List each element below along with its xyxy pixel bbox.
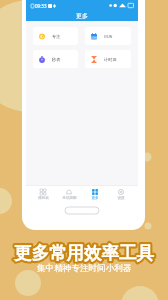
button[interactable]: 更多 xyxy=(82,189,108,201)
staticText: 专注 xyxy=(52,34,61,39)
staticText: 考试提醒 xyxy=(62,196,77,201)
staticText: 09:33 xyxy=(35,3,47,9)
staticText: 更多 xyxy=(91,196,99,201)
button[interactable]: 课程表 xyxy=(30,189,56,201)
button[interactable]: 设置 xyxy=(108,189,134,201)
staticText: 更多 xyxy=(76,12,88,20)
staticText: 计时器 xyxy=(104,57,117,62)
staticText: 更多常用效率工具 xyxy=(14,242,154,264)
button[interactable]: 考试提醒 xyxy=(56,189,82,201)
button[interactable]: 计时器 xyxy=(85,50,131,68)
button[interactable]: 专注 xyxy=(33,27,78,45)
staticText: 设置 xyxy=(117,196,125,201)
staticText: 秒表 xyxy=(52,57,61,62)
staticText: 课程表 xyxy=(38,196,49,201)
button[interactable]: 秒表 xyxy=(33,50,78,68)
staticText: 集中精神专注时间小利器 xyxy=(37,263,132,274)
button[interactable]: 日历 xyxy=(85,27,131,45)
staticText: 更多常用效率工具 xyxy=(14,242,154,264)
staticText: 日历 xyxy=(104,34,113,39)
